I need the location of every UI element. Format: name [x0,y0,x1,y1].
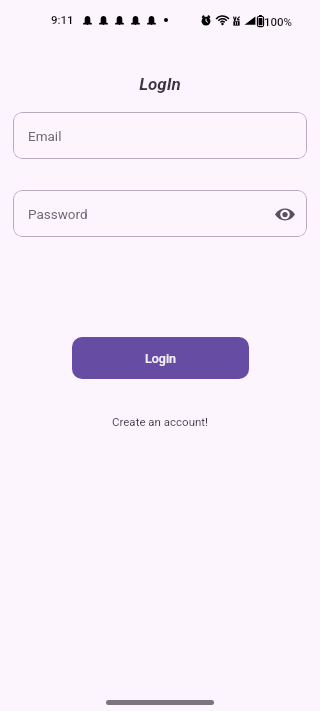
staticText: Email [28,128,62,144]
staticText: Password [28,206,88,222]
button[interactable]: Password [13,190,307,237]
button[interactable]: Create an account! [106,412,215,431]
staticText: LogIn [0,74,320,94]
staticText: Create an account! [112,415,209,428]
button[interactable]: Login [72,337,249,379]
staticText: Login [145,351,177,366]
button[interactable]: Email [13,112,307,159]
staticText: 9:11 [51,13,74,26]
button[interactable]: Show password [272,201,298,227]
staticText: 100% [264,15,293,28]
